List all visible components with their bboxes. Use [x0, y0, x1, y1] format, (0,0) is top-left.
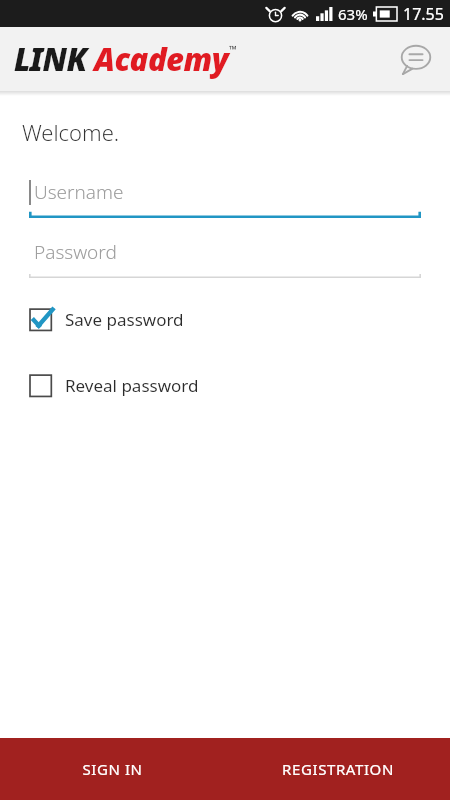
staticText: Welcome. — [22, 117, 120, 147]
button[interactable]: Reveal password — [0, 366, 450, 404]
staticText: 63% — [338, 4, 368, 24]
staticText: Reveal password — [65, 374, 199, 397]
staticText: Password — [34, 239, 117, 265]
button[interactable]: REGISTRATION — [225, 738, 450, 800]
staticText: 17.55 — [403, 3, 444, 25]
button[interactable]: Chat — [392, 35, 440, 83]
button[interactable]: SIGN IN — [0, 738, 225, 800]
staticText: SIGN IN — [82, 759, 143, 779]
staticText: Academy — [94, 38, 229, 80]
button[interactable]: Save password — [0, 300, 450, 338]
staticText: LINK — [14, 38, 87, 80]
staticText: Username — [34, 179, 124, 205]
staticText: Save password — [65, 308, 184, 331]
button[interactable]: Username — [29, 179, 421, 218]
staticText: REGISTRATION — [282, 759, 394, 779]
button[interactable]: Password — [29, 239, 421, 278]
staticText: ™ — [229, 42, 237, 56]
